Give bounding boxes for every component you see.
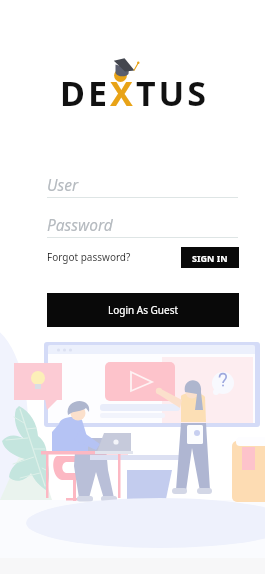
staticText: X [110,70,136,116]
staticText: DE [60,70,110,116]
staticText: Forgot password? [47,250,131,264]
staticText: User [47,174,79,195]
staticText: TUS [136,70,210,116]
staticText: SIGN IN [192,252,228,264]
button[interactable]: Password [47,214,238,238]
button[interactable]: SIGN IN [181,247,239,268]
staticText: Login As Guest [108,303,179,317]
button[interactable]: Forgot password? [47,250,131,264]
staticText: Password [47,214,113,235]
button[interactable]: Login As Guest [47,293,239,327]
button[interactable]: User [47,174,238,198]
